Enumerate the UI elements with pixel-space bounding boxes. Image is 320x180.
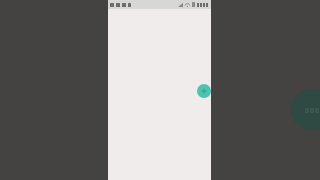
button[interactable]: Compose — [197, 84, 211, 98]
button[interactable]: Brand badge — [291, 89, 320, 131]
